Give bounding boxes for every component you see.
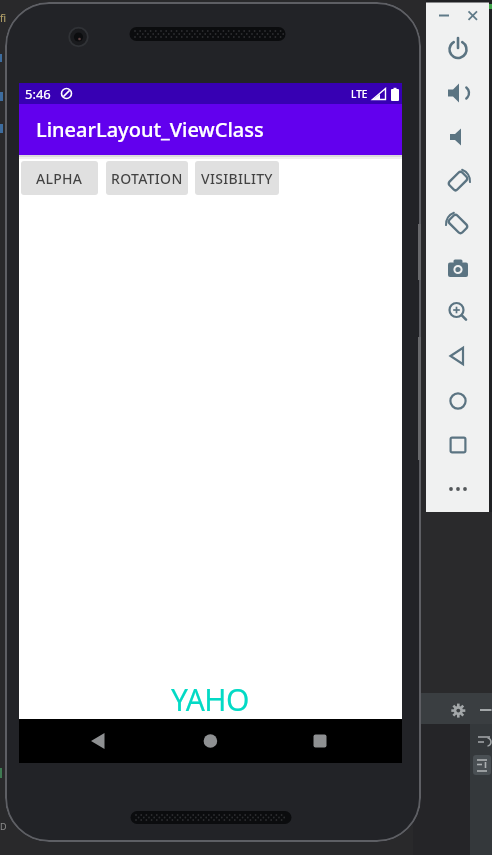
- button[interactable]: VISIBILITY: [195, 161, 279, 195]
- button[interactable]: [190, 721, 230, 761]
- button[interactable]: [438, 249, 478, 289]
- button[interactable]: [438, 160, 478, 200]
- staticText: 5:46: [25, 85, 51, 103]
- staticText: YAHO: [171, 679, 250, 720]
- button[interactable]: [438, 336, 478, 376]
- staticText: LTE: [351, 87, 368, 101]
- button[interactable]: [300, 721, 340, 761]
- staticText: LinearLayout_ViewClass: [36, 116, 264, 143]
- button[interactable]: [438, 117, 478, 157]
- staticText: fi: [0, 11, 7, 25]
- button[interactable]: [438, 381, 478, 421]
- button[interactable]: [438, 203, 478, 243]
- staticText: ROTATION: [111, 169, 183, 188]
- button[interactable]: ROTATION: [106, 161, 188, 195]
- button[interactable]: [438, 29, 478, 69]
- button[interactable]: [77, 721, 117, 761]
- button[interactable]: [438, 73, 478, 113]
- button[interactable]: ALPHA: [21, 161, 98, 195]
- button[interactable]: [438, 469, 478, 509]
- button[interactable]: [438, 292, 478, 332]
- button[interactable]: [438, 425, 478, 465]
- staticText: ALPHA: [36, 169, 83, 188]
- staticText: VISIBILITY: [201, 169, 273, 188]
- staticText: D: [0, 820, 7, 832]
